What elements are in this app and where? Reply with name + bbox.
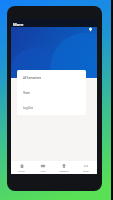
button[interactable]: Notifications xyxy=(88,27,93,32)
button[interactable]: Rewards xyxy=(53,161,75,174)
staticText: Share xyxy=(23,91,30,95)
staticText: All Transactions xyxy=(23,76,42,80)
staticText: Scan xyxy=(40,169,46,172)
button[interactable]: Log Out xyxy=(17,100,86,115)
button[interactable]: Home xyxy=(11,161,32,174)
staticText: Log Out xyxy=(23,106,33,110)
staticText: More xyxy=(83,169,89,172)
button[interactable]: Scan xyxy=(32,161,53,174)
staticText: Rewards xyxy=(59,169,69,172)
staticText: Home xyxy=(18,169,25,172)
staticText: More xyxy=(13,22,24,27)
button[interactable]: Share xyxy=(17,85,86,100)
button[interactable]: All Transactions xyxy=(17,70,86,85)
button[interactable]: More xyxy=(75,161,97,174)
